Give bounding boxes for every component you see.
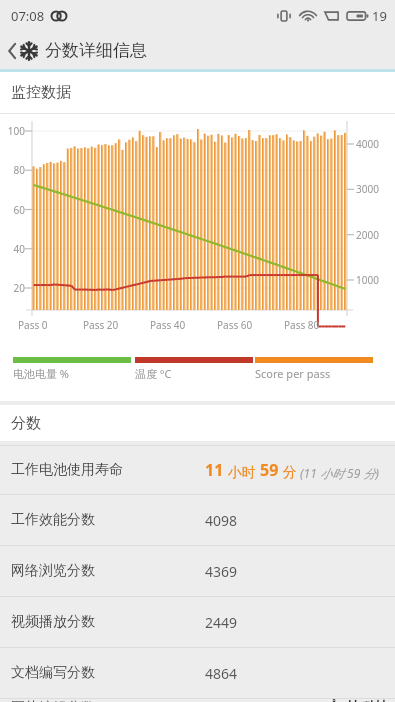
staticText: Score per pass [255, 366, 331, 381]
staticText: 59 [260, 459, 279, 481]
staticText: Pass 60 [217, 318, 253, 332]
staticText: 工作效能分数 [11, 511, 95, 529]
staticText: 小时 [224, 462, 260, 481]
button[interactable]: 图片编辑分数 [0, 699, 395, 702]
button[interactable]: Back [0, 32, 395, 69]
staticText: 温度 °C [135, 366, 172, 381]
staticText: 4369 [205, 562, 238, 581]
staticText: 电池电量 % [13, 366, 70, 381]
staticText: 4864 [205, 664, 238, 683]
staticText: 3000 [356, 182, 379, 196]
staticText: Pass 40 [150, 318, 186, 332]
button[interactable]: 工作电池使用寿命 [0, 446, 395, 494]
staticText: 分 [279, 462, 297, 481]
staticText: 图片编辑分数 [11, 699, 95, 702]
staticText: 文档编写分数 [11, 664, 95, 682]
staticText: 工作电池使用寿命 [11, 461, 123, 479]
staticText: 网络浏览分数 [11, 562, 95, 580]
staticText: 100 [0, 124, 25, 138]
other: Back [5, 39, 19, 63]
staticText: 07:08 [11, 7, 45, 25]
staticText: 4098 [205, 511, 238, 530]
staticText: 1000 [356, 273, 379, 287]
staticText: 视频播放分数 [11, 613, 95, 631]
button[interactable]: 视频播放分数 [0, 597, 395, 647]
staticText: Pass 80 [284, 318, 320, 332]
staticText: 4000 [356, 137, 379, 151]
staticText: 19 [372, 7, 387, 25]
staticText: 2000 [356, 228, 379, 242]
staticText: 20 [0, 281, 25, 295]
button[interactable]: 网络浏览分数 [0, 546, 395, 596]
staticText: Pass 20 [83, 318, 119, 332]
staticText: 分数详细信息 [45, 40, 147, 61]
staticText: 2449 [205, 613, 238, 632]
staticText: 快科技 [347, 699, 389, 702]
staticText: 11 [205, 459, 224, 481]
staticText: 60 [0, 203, 25, 217]
staticText: Pass 0 [18, 318, 48, 332]
staticText: 监控数据 [11, 83, 71, 102]
staticText: 80 [0, 163, 25, 177]
button[interactable]: 工作效能分数 [0, 495, 395, 545]
staticText: 分数 [11, 414, 41, 433]
button[interactable]: 文档编写分数 [0, 648, 395, 698]
staticText: 40 [0, 242, 25, 256]
staticText: (11 小时 59 分) [297, 465, 379, 481]
